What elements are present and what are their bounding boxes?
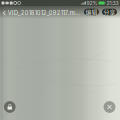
button[interactable]: Lock [4,101,16,113]
button[interactable]: Close [103,101,115,113]
staticText: VID_20181012_092117.mp4 [8,9,80,16]
button[interactable]: 编辑 [84,9,99,15]
staticText: 编辑 [85,8,97,16]
staticText: 分享 [103,8,115,16]
button[interactable]: VID_20181012_092117.mp4 [0,8,82,18]
staticText: 92% [86,0,97,6]
staticText: 21:33 [106,0,118,6]
button[interactable]: 分享 [102,9,117,15]
